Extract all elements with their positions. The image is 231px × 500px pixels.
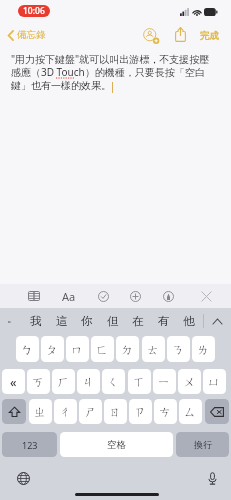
button[interactable]: 他 (178, 310, 200, 332)
staticText: ㄌ (197, 342, 210, 357)
button[interactable]: ㄕ (79, 399, 102, 424)
button[interactable]: 這 (51, 310, 73, 332)
staticText: 10:06 (23, 5, 45, 17)
button[interactable]: 我 (25, 310, 47, 332)
button[interactable]: 123 (2, 432, 57, 457)
staticText: ㄔ (59, 404, 72, 419)
button[interactable]: Switch keyboard (13, 468, 33, 488)
button[interactable]: 在 (127, 310, 149, 332)
staticText: 我 (30, 314, 42, 328)
button[interactable]: Add people (142, 27, 159, 44)
staticText: ㄘ (159, 404, 172, 419)
staticText: ㄩ (208, 374, 221, 389)
button[interactable]: ㄏ (52, 369, 75, 394)
button[interactable]: Dictation (202, 468, 222, 488)
staticText: 有 (158, 314, 170, 328)
staticText: ㄎ (32, 374, 45, 389)
staticText: ㄕ (84, 404, 97, 419)
button[interactable]: ㄊ (142, 336, 165, 362)
staticText: 完成 (200, 30, 219, 42)
button[interactable]: ㄅ (16, 336, 39, 362)
button[interactable]: « (2, 369, 25, 394)
staticText: Aa (62, 289, 76, 304)
staticText: 他 (183, 314, 195, 328)
button[interactable]: ㄩ (203, 369, 226, 394)
staticText: ㄅ (21, 342, 34, 357)
button[interactable]: ㄨ (178, 369, 201, 394)
button[interactable]: Delete (205, 399, 229, 424)
button[interactable]: ㄓ (29, 399, 52, 424)
staticText: 你 (81, 314, 93, 328)
staticText: ㄈ (96, 342, 109, 357)
button[interactable]: ㄖ (104, 399, 127, 424)
staticText: ㄇ (71, 342, 84, 357)
button[interactable]: ㄙ (179, 399, 202, 424)
button[interactable]: ㄧ (153, 369, 176, 394)
staticText: 123 (22, 439, 38, 451)
staticText: ㄋ (172, 342, 185, 357)
staticText: ㄊ (147, 342, 160, 357)
staticText: 但 (107, 314, 119, 328)
button[interactable]: ㄋ (167, 336, 190, 362)
staticText: ㄑ (107, 374, 120, 389)
staticText: « (10, 374, 17, 390)
button[interactable]: Shift (2, 399, 26, 424)
staticText: ㄐ (82, 374, 95, 389)
button[interactable]: ㄗ (129, 399, 152, 424)
staticText: 換行 (194, 439, 212, 450)
staticText: ㄙ (184, 404, 197, 419)
other: Delete (210, 407, 224, 417)
staticText: ㄉ (121, 342, 134, 357)
button[interactable]: Checklist (92, 285, 114, 307)
staticText: ㄧ (158, 374, 171, 389)
button[interactable]: Markup (157, 285, 179, 307)
button[interactable]: Share (172, 26, 189, 43)
staticText: ㄨ (183, 374, 196, 389)
button[interactable]: 完成 (196, 27, 222, 44)
staticText: 備忘錄 (17, 29, 46, 41)
staticText: 在 (132, 314, 144, 328)
button[interactable]: 但 (102, 310, 124, 332)
button[interactable]: Close (195, 285, 217, 307)
button[interactable]: ㄐ (77, 369, 100, 394)
button[interactable]: 空格 (60, 432, 173, 457)
staticText: 這 (56, 314, 68, 328)
staticText: "用力按下鍵盤"就可以叫出游標，不支援按壓感應（3D Touch）的機種，只要長… (11, 52, 216, 92)
staticText: ㄒ (133, 374, 146, 389)
button[interactable]: 你 (76, 310, 98, 332)
staticText: ㄗ (134, 404, 147, 419)
button[interactable]: ㄎ (27, 369, 50, 394)
button[interactable]: Table (23, 285, 45, 307)
button[interactable]: 有 (153, 310, 175, 332)
staticText: ㄏ (57, 374, 70, 389)
other: Shift (9, 406, 20, 418)
staticText: ㄓ (34, 404, 47, 419)
staticText: 。 (7, 311, 18, 325)
staticText: ㄆ (46, 342, 59, 357)
button[interactable]: 備忘錄 (5, 26, 49, 44)
button[interactable]: Attach (124, 285, 146, 307)
button[interactable]: ㄉ (116, 336, 139, 362)
button[interactable]: Expand candidates (207, 311, 227, 331)
staticText: ㄖ (109, 404, 122, 419)
button[interactable]: ㄆ (41, 336, 64, 362)
button[interactable]: ㄌ (192, 336, 215, 362)
button[interactable]: 換行 (176, 432, 229, 457)
button[interactable]: Format (58, 285, 80, 307)
button[interactable]: ㄈ (91, 336, 114, 362)
button[interactable]: ㄑ (102, 369, 125, 394)
staticText: 空格 (107, 439, 126, 451)
button[interactable]: ㄒ (128, 369, 151, 394)
button[interactable]: ㄇ (66, 336, 89, 362)
button[interactable]: ㄔ (54, 399, 77, 424)
button[interactable]: ㄘ (154, 399, 177, 424)
